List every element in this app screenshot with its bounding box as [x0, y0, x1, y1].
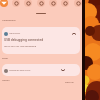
staticText: Silent	[2, 57, 8, 60]
staticText: Android System	[9, 32, 21, 34]
staticText: USB debugging connected	[4, 38, 44, 42]
button[interactable]: Expand	[59, 66, 67, 74]
button[interactable]: Quick setting	[37, 0, 45, 7]
button[interactable]: Charging this device via USB	[2, 64, 80, 76]
button[interactable]: Android System	[2, 27, 80, 54]
button[interactable]: Quick setting	[61, 0, 69, 7]
button[interactable]: Clear all	[64, 79, 75, 86]
staticText: Tap to turn off USB debugging	[4, 45, 37, 48]
button[interactable]: Quick setting	[49, 0, 57, 7]
staticText: History	[2, 79, 10, 82]
button[interactable]: Collapse	[70, 30, 78, 38]
button[interactable]: Quick setting	[74, 0, 82, 7]
button[interactable]: Quick setting	[24, 0, 32, 7]
staticText: Notifications	[2, 19, 16, 22]
staticText: Charging this device via USB	[9, 69, 31, 71]
button[interactable]: Quick setting	[12, 0, 20, 7]
button[interactable]: Quick setting	[0, 0, 8, 7]
staticText: Clear all	[65, 81, 74, 84]
